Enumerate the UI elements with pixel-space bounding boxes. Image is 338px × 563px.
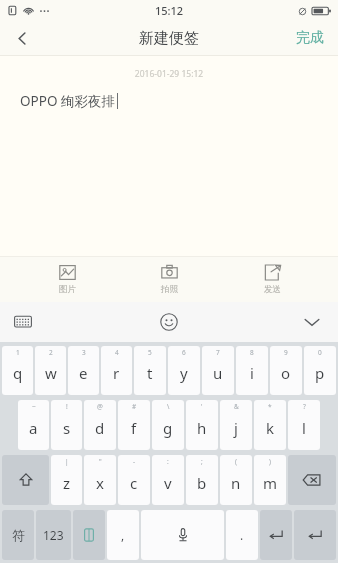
staticText: x bbox=[96, 473, 104, 493]
staticText: 123 bbox=[43, 527, 64, 543]
staticText: n bbox=[231, 473, 241, 493]
staticText: 发送 bbox=[264, 284, 281, 295]
staticText: 7 bbox=[216, 348, 220, 357]
button[interactable]: 2016-01-29 15:12 bbox=[0, 56, 338, 256]
staticText: ( bbox=[235, 457, 237, 466]
button[interactable]: ( bbox=[220, 455, 252, 505]
staticText: y bbox=[180, 363, 188, 383]
button[interactable]: 1 bbox=[2, 346, 33, 395]
staticText: : bbox=[167, 457, 169, 466]
button[interactable]: 7 bbox=[202, 346, 234, 395]
staticText: 9 bbox=[284, 348, 288, 357]
button[interactable]: * bbox=[254, 400, 286, 450]
button[interactable]: 发送 bbox=[236, 257, 308, 302]
button[interactable]: Keyboard settings bbox=[10, 309, 36, 335]
staticText: ! bbox=[66, 402, 68, 411]
staticText: m bbox=[263, 473, 278, 493]
button[interactable]: 4 bbox=[101, 346, 132, 395]
button[interactable]: 9 bbox=[270, 346, 302, 395]
staticText: h bbox=[197, 418, 207, 438]
button[interactable]: ; bbox=[186, 455, 218, 505]
staticText: @ bbox=[97, 402, 103, 411]
button[interactable]: & bbox=[220, 400, 252, 450]
staticText: b bbox=[197, 473, 207, 493]
button[interactable]: \ bbox=[152, 400, 184, 450]
button[interactable]: 完成 bbox=[282, 21, 338, 55]
button[interactable]: 拍照 bbox=[133, 257, 205, 302]
staticText: 新建便签 bbox=[139, 29, 199, 48]
staticText: 完成 bbox=[296, 29, 324, 47]
staticText: c bbox=[130, 473, 138, 493]
button[interactable]: 符 bbox=[2, 510, 34, 560]
staticText: , bbox=[121, 527, 125, 543]
button[interactable]: Voice input bbox=[141, 510, 224, 560]
button[interactable]: 图片 bbox=[31, 257, 103, 302]
button[interactable]: Hide keyboard bbox=[298, 308, 326, 336]
staticText: 1 bbox=[16, 348, 20, 357]
staticText: z bbox=[63, 473, 71, 493]
button[interactable]: 5 bbox=[134, 346, 166, 395]
button[interactable]: ) bbox=[254, 455, 286, 505]
button[interactable]: # bbox=[118, 400, 150, 450]
staticText: 6 bbox=[182, 348, 186, 357]
button[interactable]: ' bbox=[186, 400, 218, 450]
button[interactable]: Menu bbox=[294, 510, 336, 560]
staticText: p bbox=[315, 363, 325, 383]
staticText: 符 bbox=[12, 527, 25, 543]
staticText: . bbox=[240, 527, 244, 543]
staticText: \ bbox=[167, 402, 170, 411]
button[interactable]: Backspace bbox=[288, 455, 336, 505]
staticText: a bbox=[29, 418, 38, 438]
staticText: e bbox=[79, 363, 88, 383]
staticText: ; bbox=[201, 457, 203, 466]
button[interactable]: ! bbox=[51, 400, 82, 450]
button[interactable]: Emoji bbox=[155, 308, 183, 336]
button[interactable]: 8 bbox=[236, 346, 268, 395]
staticText: 5 bbox=[148, 348, 152, 357]
staticText: ' bbox=[201, 402, 203, 411]
staticText: " bbox=[99, 457, 102, 466]
staticText: * bbox=[268, 402, 272, 411]
staticText: - bbox=[133, 457, 136, 466]
staticText: o bbox=[281, 363, 291, 383]
button[interactable]: ~ bbox=[18, 400, 49, 450]
button[interactable]: | bbox=[51, 455, 82, 505]
staticText: | bbox=[65, 457, 69, 466]
button[interactable]: , bbox=[107, 510, 139, 560]
button[interactable]: Switch language bbox=[73, 510, 105, 560]
staticText: d bbox=[95, 418, 105, 438]
button[interactable]: 6 bbox=[168, 346, 200, 395]
staticText: s bbox=[63, 418, 71, 438]
staticText: t bbox=[147, 363, 153, 383]
button[interactable]: " bbox=[84, 455, 116, 505]
button[interactable]: - bbox=[118, 455, 150, 505]
button[interactable]: 2 bbox=[35, 346, 66, 395]
staticText: g bbox=[163, 418, 173, 438]
staticText: 4 bbox=[115, 348, 119, 357]
button[interactable]: Shift bbox=[2, 455, 49, 505]
button[interactable]: 123 bbox=[36, 510, 71, 560]
staticText: j bbox=[234, 418, 238, 438]
button[interactable]: : bbox=[152, 455, 184, 505]
staticText: 拍照 bbox=[161, 284, 178, 295]
button[interactable]: Back bbox=[0, 21, 44, 55]
staticText: ) bbox=[269, 457, 271, 466]
button[interactable]: 0 bbox=[304, 346, 336, 395]
button[interactable]: 3 bbox=[68, 346, 99, 395]
staticText: 2 bbox=[49, 348, 53, 357]
staticText: i bbox=[250, 363, 254, 383]
staticText: OPPO 绚彩夜排 bbox=[20, 92, 115, 110]
staticText: k bbox=[266, 418, 275, 438]
staticText: v bbox=[164, 473, 172, 493]
staticText: 0 bbox=[318, 348, 322, 357]
staticText: w bbox=[45, 363, 57, 383]
staticText: ? bbox=[303, 402, 306, 411]
button[interactable]: . bbox=[226, 510, 258, 560]
staticText: & bbox=[234, 402, 239, 411]
button[interactable]: ? bbox=[288, 400, 320, 450]
staticText: f bbox=[131, 418, 137, 438]
button[interactable]: Enter bbox=[260, 510, 292, 560]
staticText: r bbox=[113, 363, 120, 383]
staticText: 8 bbox=[250, 348, 254, 357]
button[interactable]: @ bbox=[84, 400, 116, 450]
